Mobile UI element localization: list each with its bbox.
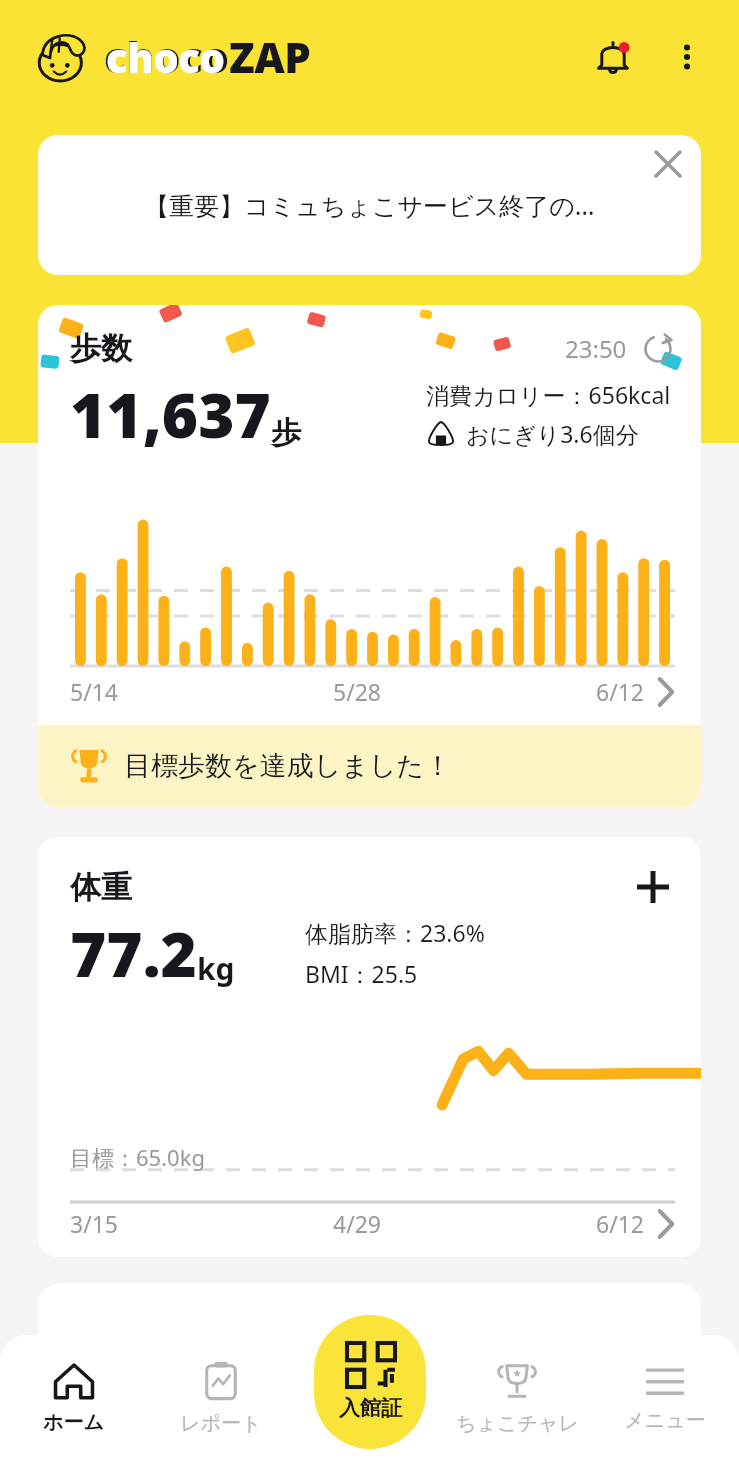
button[interactable]: 歩数 bbox=[38, 305, 701, 725]
button[interactable]: 【重要】コミュちょこサービス終了の… bbox=[38, 135, 701, 275]
button[interactable]: Close bbox=[645, 141, 691, 187]
staticText: 目標：65.0kg bbox=[70, 1142, 205, 1172]
staticText: choco bbox=[106, 30, 225, 84]
button[interactable]: Notifications bbox=[583, 27, 643, 87]
staticText: おにぎり3.6個分 bbox=[466, 418, 639, 449]
staticText: 体脂肪率：23.6% bbox=[305, 917, 485, 948]
button[interactable]: ホーム bbox=[0, 1335, 147, 1461]
staticText: 5/28 bbox=[333, 676, 382, 707]
staticText: ZAP bbox=[229, 28, 311, 85]
staticText: 目標歩数を達成しました！ bbox=[124, 749, 452, 783]
button[interactable]: 目標歩数を達成しました！ bbox=[38, 725, 701, 807]
staticText: 23:50 bbox=[565, 332, 627, 365]
staticText: 5/14 bbox=[70, 676, 119, 707]
staticText: 4/29 bbox=[333, 1208, 382, 1239]
staticText: 3/15 bbox=[70, 1208, 119, 1239]
button[interactable]: Refresh bbox=[641, 332, 675, 366]
staticText: 体重 bbox=[70, 868, 132, 907]
staticText: ちょこチャレ bbox=[456, 1411, 579, 1436]
staticText: 歩 bbox=[271, 414, 301, 452]
button[interactable]: 入館証 bbox=[314, 1315, 426, 1449]
staticText: BMI：25.5 bbox=[305, 958, 418, 989]
button[interactable]: ちょこチャレ bbox=[443, 1335, 591, 1461]
staticText: 6/12 bbox=[596, 1208, 645, 1239]
button[interactable]: More options bbox=[661, 31, 713, 83]
staticText: 消費カロリー：656kcal bbox=[426, 379, 671, 410]
staticText: ホーム bbox=[43, 1410, 104, 1435]
staticText: 歩数 bbox=[70, 329, 132, 368]
staticText: 入館証 bbox=[339, 1395, 402, 1421]
staticText: メニュー bbox=[624, 1408, 706, 1433]
button[interactable]: Add weight record bbox=[631, 865, 675, 909]
staticText: 11,637 bbox=[70, 372, 271, 456]
staticText: 6/12 bbox=[596, 676, 645, 707]
staticText: 【重要】コミュちょこサービス終了の… bbox=[144, 188, 595, 222]
staticText: レポート bbox=[180, 1411, 262, 1436]
button[interactable]: メニュー bbox=[591, 1335, 739, 1461]
button[interactable]: レポート bbox=[147, 1335, 295, 1461]
staticText: choco bbox=[104, 28, 229, 85]
staticText: 77.2 bbox=[70, 911, 197, 995]
staticText: kg bbox=[197, 948, 235, 989]
button[interactable]: 体重 bbox=[38, 837, 701, 1257]
